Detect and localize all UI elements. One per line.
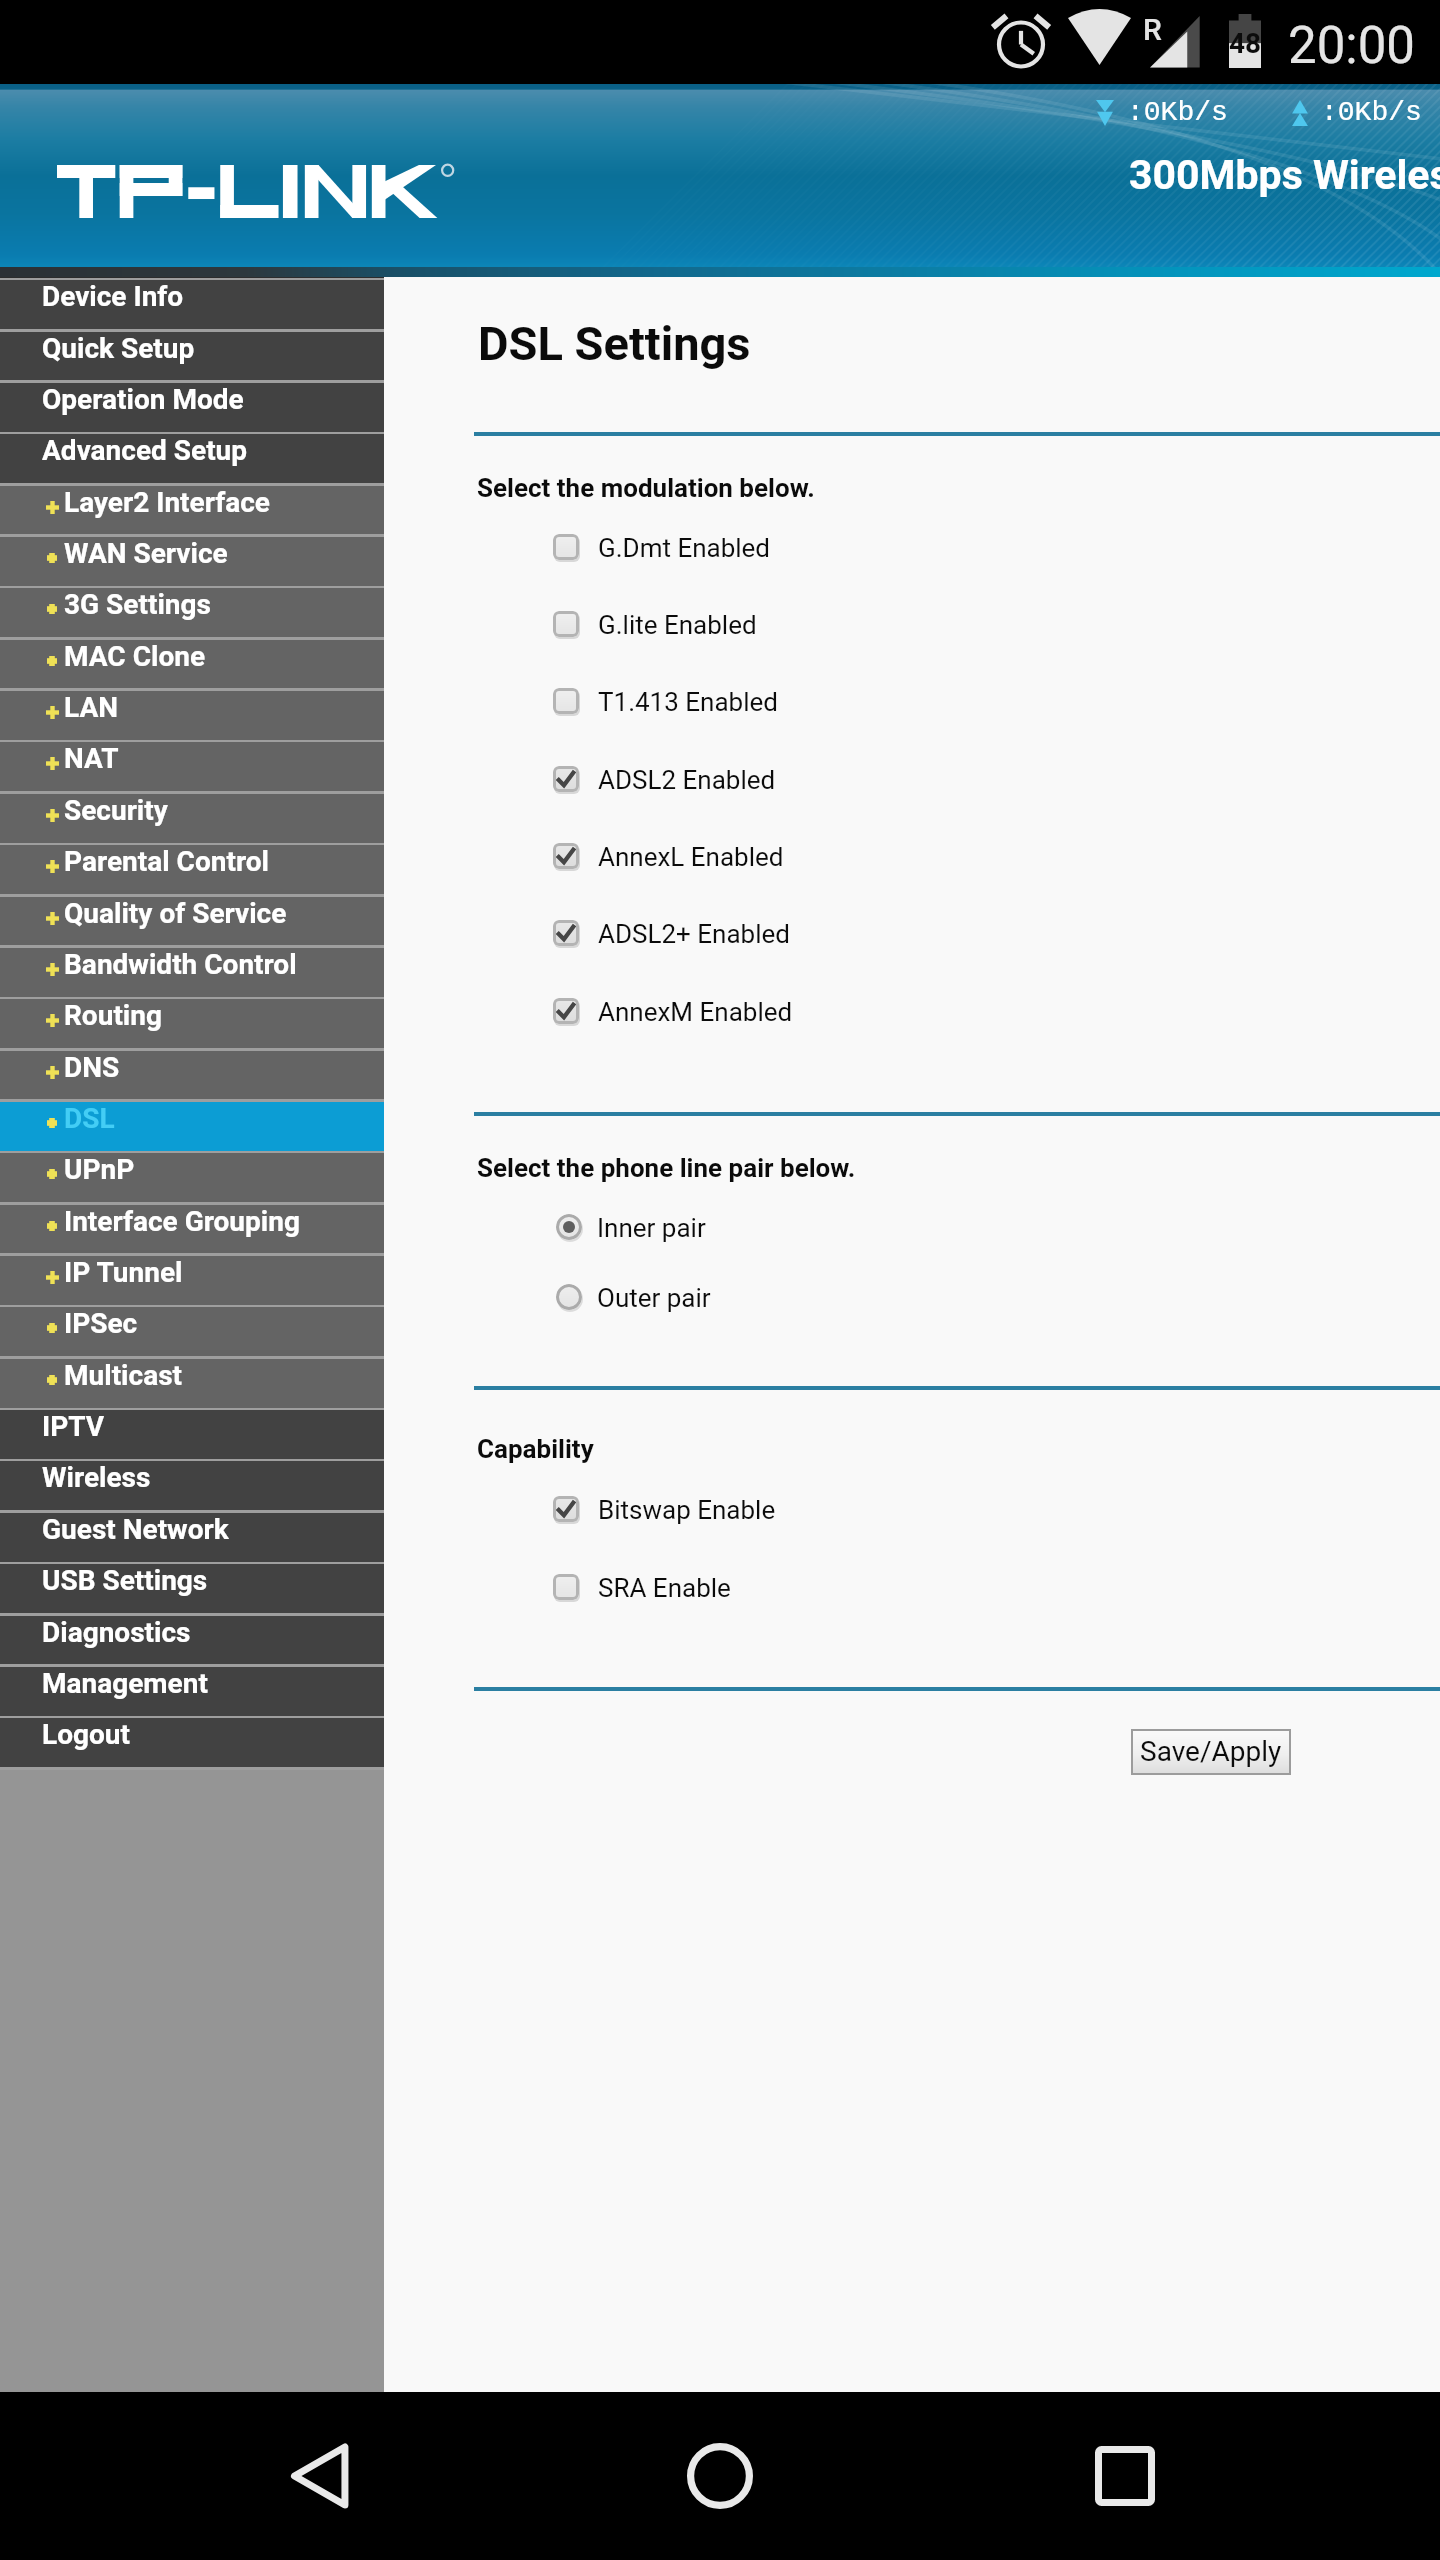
button[interactable]: AnnexM Enabled xyxy=(553,986,793,1038)
staticText: Select the modulation below. xyxy=(477,473,815,503)
staticText: Guest Network xyxy=(42,1513,229,1546)
staticText: 3G Settings xyxy=(64,588,211,621)
staticText: IPSec xyxy=(64,1307,138,1340)
staticText: DNS xyxy=(64,1051,120,1084)
staticText: Capability xyxy=(477,1434,594,1464)
button[interactable]: NAT xyxy=(0,742,384,791)
button[interactable]: IPSec xyxy=(0,1307,384,1356)
staticText: Logout xyxy=(42,1718,130,1751)
staticText: MAC Clone xyxy=(64,640,206,673)
button[interactable]: UPnP xyxy=(0,1153,384,1202)
staticText: Save/Apply xyxy=(1140,1735,1282,1768)
staticText: IPTV xyxy=(42,1410,105,1443)
button[interactable]: ADSL2 Enabled xyxy=(553,754,776,806)
button[interactable]: Management xyxy=(0,1667,384,1716)
staticText: ADSL2 Enabled xyxy=(598,765,776,795)
button[interactable]: Home xyxy=(640,2392,800,2560)
button[interactable]: T1.413 Enabled xyxy=(553,676,778,728)
staticText: UPnP xyxy=(64,1153,135,1186)
staticText: 300Mbps Wireles xyxy=(1129,151,1440,199)
staticText: Select the phone line pair below. xyxy=(477,1153,856,1183)
staticText: USB Settings xyxy=(42,1564,208,1597)
button[interactable]: Diagnostics xyxy=(0,1616,384,1665)
button[interactable]: LAN xyxy=(0,691,384,740)
button[interactable]: Parental Control xyxy=(0,845,384,894)
staticText: G.Dmt Enabled xyxy=(598,533,771,563)
staticText: Interface Grouping xyxy=(64,1205,300,1238)
staticText: :0Kb/s xyxy=(1127,97,1228,129)
staticText: Multicast xyxy=(64,1359,183,1392)
button[interactable]: USB Settings xyxy=(0,1564,384,1613)
button[interactable]: IPTV xyxy=(0,1410,384,1459)
button[interactable]: Logout xyxy=(0,1718,384,1767)
staticText: DSL xyxy=(64,1102,115,1135)
button[interactable]: Outer pair xyxy=(556,1272,711,1324)
staticText: Bandwidth Control xyxy=(64,948,297,981)
button[interactable]: Routing xyxy=(0,999,384,1048)
staticText: AnnexM Enabled xyxy=(598,997,793,1027)
button[interactable]: Operation Mode xyxy=(0,383,384,432)
button[interactable]: Bitswap Enable xyxy=(553,1484,776,1536)
button[interactable]: IP Tunnel xyxy=(0,1256,384,1305)
button[interactable]: WAN Service xyxy=(0,537,384,586)
staticText: Routing xyxy=(64,999,162,1032)
button[interactable]: Quick Setup xyxy=(0,332,384,381)
button[interactable]: Device Info xyxy=(0,280,384,329)
staticText: NAT xyxy=(64,742,119,775)
staticText: Wireless xyxy=(42,1461,151,1494)
button[interactable]: AnnexL Enabled xyxy=(553,831,784,883)
button[interactable]: MAC Clone xyxy=(0,640,384,689)
staticText: 48 xyxy=(1229,27,1262,60)
staticText: :0Kb/s xyxy=(1321,97,1422,129)
button[interactable]: Advanced Setup xyxy=(0,434,384,483)
staticText: 20:00 xyxy=(1288,16,1416,76)
staticText: Quick Setup xyxy=(42,332,195,365)
button[interactable]: 3G Settings xyxy=(0,588,384,637)
staticText: Layer2 Interface xyxy=(64,486,271,519)
staticText: WAN Service xyxy=(64,537,228,570)
staticText: ADSL2+ Enabled xyxy=(598,919,790,949)
button[interactable]: Multicast xyxy=(0,1359,384,1408)
staticText: LAN xyxy=(64,691,119,724)
staticText: Advanced Setup xyxy=(42,434,248,467)
staticText: AnnexL Enabled xyxy=(598,842,784,872)
button[interactable]: Wireless xyxy=(0,1461,384,1510)
staticText: Operation Mode xyxy=(42,383,244,416)
staticText: Security xyxy=(64,794,168,827)
button[interactable]: Interface Grouping xyxy=(0,1205,384,1254)
button[interactable]: Save/Apply xyxy=(1131,1729,1291,1775)
staticText: Parental Control xyxy=(64,845,269,878)
staticText: Diagnostics xyxy=(42,1616,191,1649)
staticText: DSL Settings xyxy=(478,316,751,371)
staticText: Bitswap Enable xyxy=(598,1495,776,1525)
button[interactable]: Layer2 Interface xyxy=(0,486,384,535)
button[interactable]: ADSL2+ Enabled xyxy=(553,908,790,960)
staticText: IP Tunnel xyxy=(64,1256,183,1289)
button[interactable]: Bandwidth Control xyxy=(0,948,384,997)
button[interactable]: Security xyxy=(0,794,384,843)
staticText: Device Info xyxy=(42,280,184,313)
button[interactable]: Inner pair xyxy=(556,1202,706,1254)
button[interactable]: Recent apps xyxy=(1045,2392,1205,2560)
staticText: Management xyxy=(42,1667,208,1700)
staticText: T1.413 Enabled xyxy=(598,687,778,717)
button[interactable]: DNS xyxy=(0,1051,384,1100)
button[interactable]: Back xyxy=(240,2392,400,2560)
button[interactable]: SRA Enable xyxy=(553,1562,731,1614)
staticText: G.lite Enabled xyxy=(598,610,757,640)
button[interactable]: Quality of Service xyxy=(0,897,384,946)
button[interactable]: DSL xyxy=(0,1102,384,1151)
staticText: SRA Enable xyxy=(598,1573,731,1603)
button[interactable]: Guest Network xyxy=(0,1513,384,1562)
staticText: R xyxy=(1143,12,1162,47)
staticText: Inner pair xyxy=(597,1213,706,1243)
button[interactable]: G.lite Enabled xyxy=(553,599,757,651)
button[interactable]: G.Dmt Enabled xyxy=(553,522,771,574)
staticText: Quality of Service xyxy=(64,897,287,930)
staticText: Outer pair xyxy=(597,1283,711,1313)
